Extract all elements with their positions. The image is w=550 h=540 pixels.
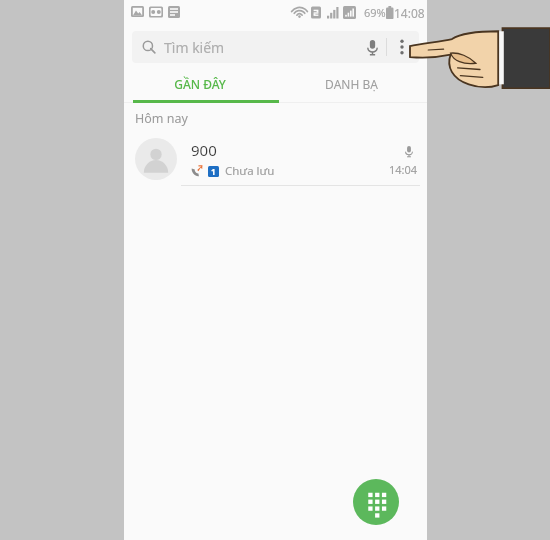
button[interactable]: Tìm kiếm — [132, 31, 419, 63]
staticText: 69% — [364, 5, 386, 20]
staticText: 14:04 — [389, 162, 418, 177]
staticText: GẦN ĐÂY — [174, 76, 226, 92]
staticText: Chưa lưu — [225, 163, 275, 179]
staticText: Tìm kiếm — [164, 38, 225, 57]
staticText: 900 — [191, 140, 217, 160]
button[interactable]: More options — [387, 32, 417, 62]
staticText: DANH BẠ — [325, 76, 378, 92]
button[interactable]: GẦN ĐÂY — [124, 68, 275, 100]
staticText: 14:08 — [394, 5, 425, 21]
staticText: Hôm nay — [135, 110, 188, 127]
button[interactable]: 900 — [124, 133, 427, 185]
button[interactable]: DANH BẠ — [275, 68, 427, 100]
staticText: 1 — [211, 166, 216, 177]
button[interactable]: Call recording — [400, 142, 418, 160]
button[interactable]: Voice search — [358, 33, 386, 61]
button[interactable]: Dialpad — [353, 479, 399, 525]
